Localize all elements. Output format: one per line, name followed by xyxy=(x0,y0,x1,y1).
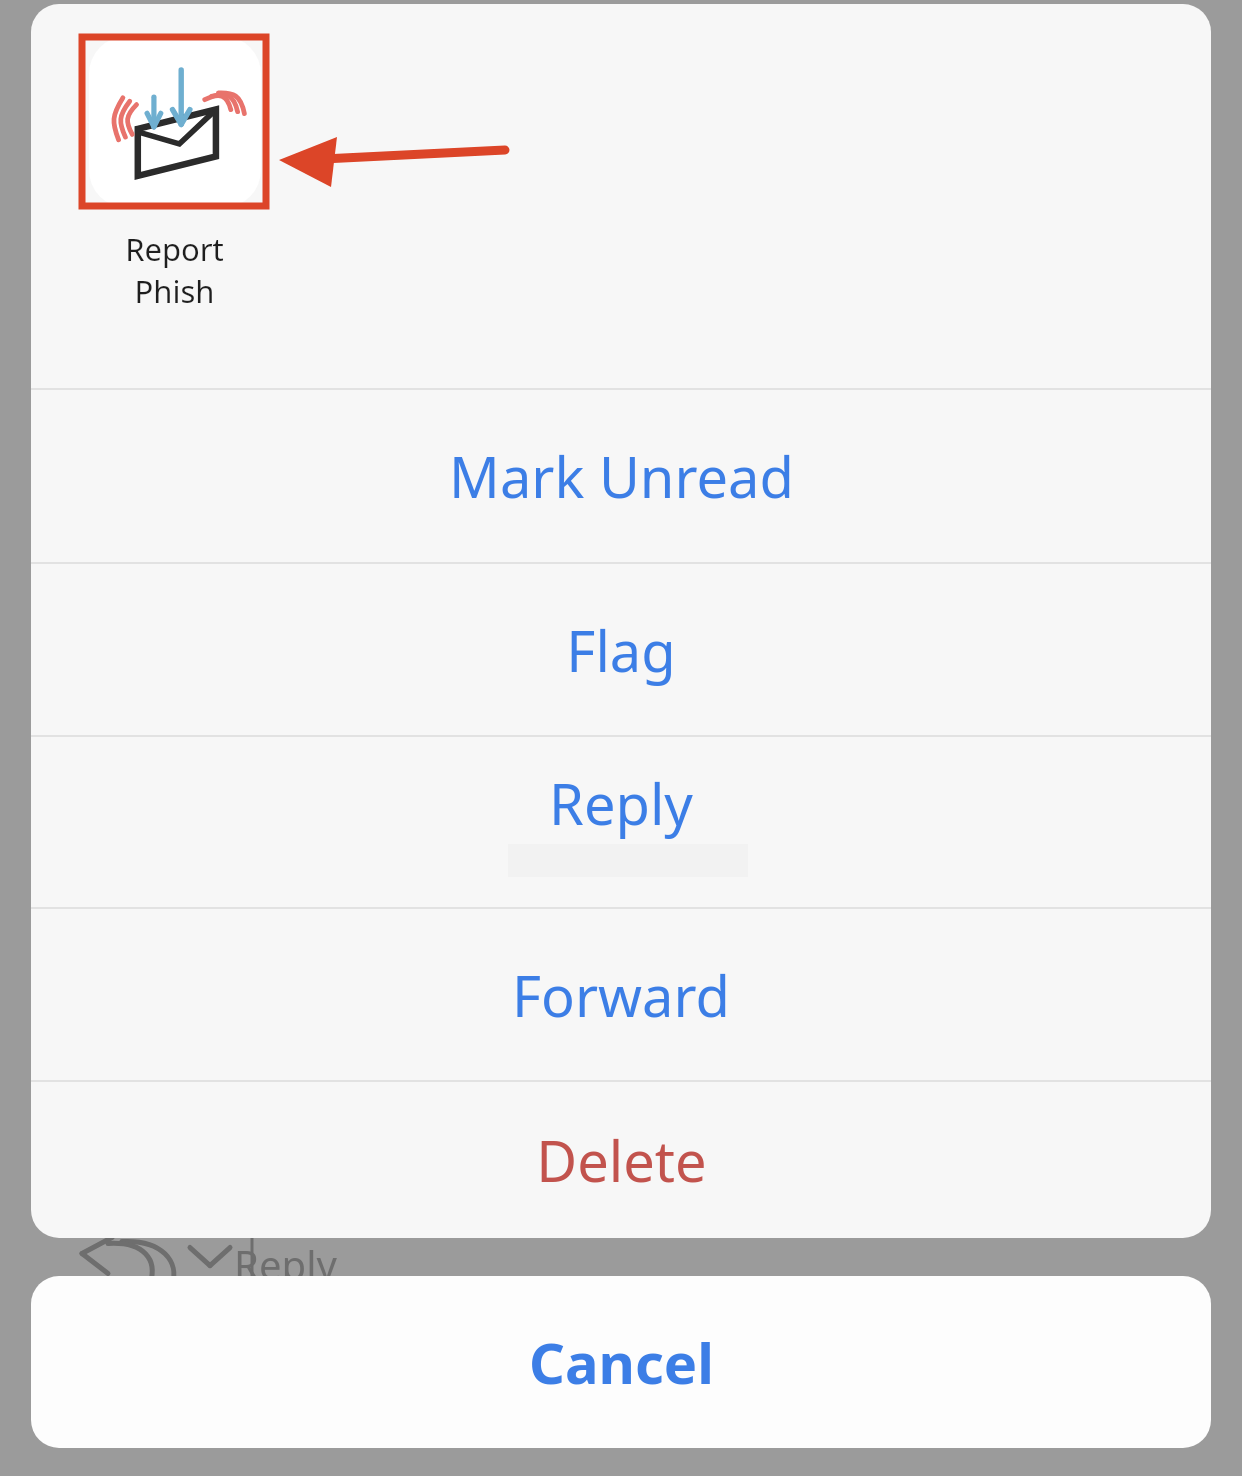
staticText: Mark Unread xyxy=(449,438,794,514)
staticText: Report Phish xyxy=(82,228,267,312)
staticText: Reply xyxy=(234,1237,337,1291)
staticText: Delete xyxy=(536,1122,707,1198)
staticText: Forward xyxy=(512,957,730,1033)
staticText: Cancel xyxy=(529,1324,714,1400)
button[interactable]: Report Phish xyxy=(82,29,267,312)
button[interactable]: Delete xyxy=(31,1082,1211,1238)
button[interactable]: Cancel xyxy=(31,1276,1211,1448)
staticText: Reply xyxy=(549,765,693,841)
button[interactable]: Forward xyxy=(31,909,1211,1080)
staticText: Flag xyxy=(566,612,676,688)
button[interactable]: Reply xyxy=(31,737,1211,907)
button[interactable]: Mark Unread xyxy=(31,390,1211,562)
button[interactable]: Flag xyxy=(31,564,1211,735)
